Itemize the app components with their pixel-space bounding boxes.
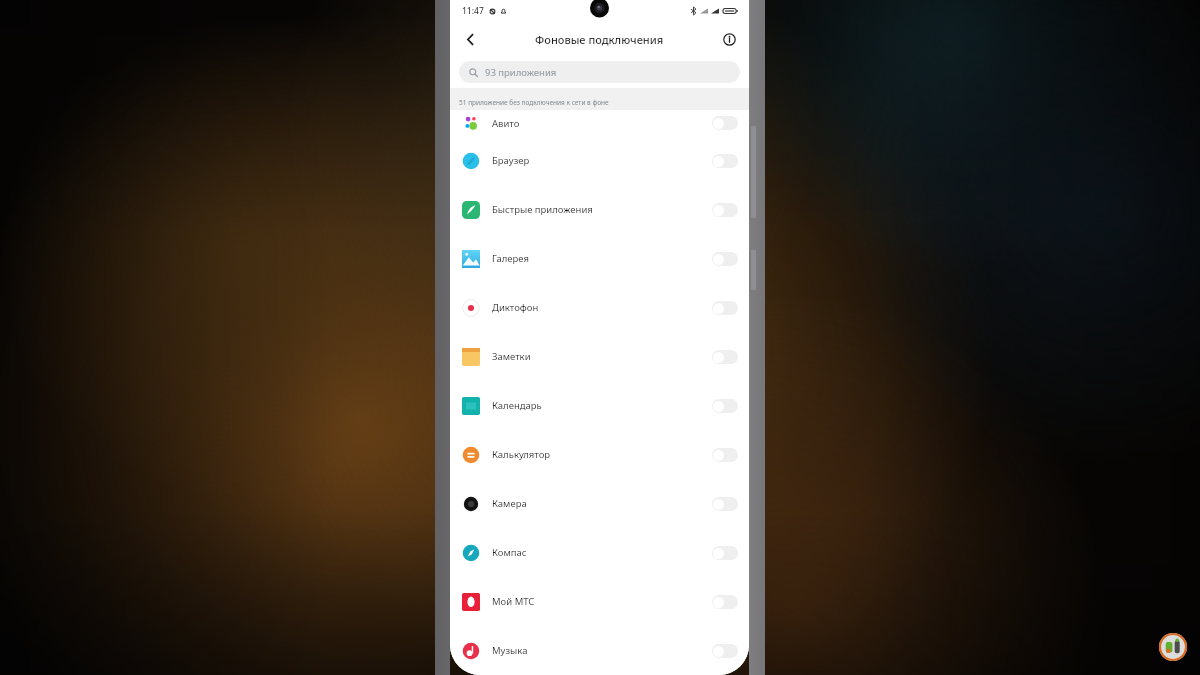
button[interactable]: Информация bbox=[714, 24, 744, 54]
staticText: Мой МТС bbox=[492, 595, 535, 608]
button[interactable]: Музыка bbox=[450, 626, 749, 675]
button[interactable]: Мой МТС bbox=[450, 577, 749, 626]
button[interactable]: Переключатель bbox=[712, 595, 738, 609]
button[interactable]: Переключатель bbox=[712, 116, 738, 130]
button[interactable]: Переключатель bbox=[712, 644, 738, 658]
button[interactable]: Переключатель bbox=[712, 399, 738, 413]
staticText: Авито bbox=[492, 117, 520, 130]
staticText: Компас bbox=[492, 546, 527, 559]
button[interactable]: Переключатель bbox=[712, 546, 738, 560]
button[interactable]: Галерея bbox=[450, 234, 749, 283]
button[interactable]: Браузер bbox=[450, 136, 749, 185]
staticText: 93 приложения bbox=[485, 66, 557, 79]
staticText: Галерея bbox=[492, 252, 529, 265]
staticText: Быстрые приложения bbox=[492, 203, 593, 216]
button[interactable]: Диктофон bbox=[450, 283, 749, 332]
staticText: Калькулятор bbox=[492, 448, 551, 461]
button[interactable]: Компас bbox=[450, 528, 749, 577]
button[interactable]: Быстрые приложения bbox=[450, 185, 749, 234]
button[interactable]: Переключатель bbox=[712, 301, 738, 315]
button[interactable]: Переключатель bbox=[712, 203, 738, 217]
button[interactable]: Переключатель bbox=[712, 252, 738, 266]
button[interactable]: Калькулятор bbox=[450, 430, 749, 479]
button[interactable]: Календарь bbox=[450, 381, 749, 430]
button[interactable]: Камера bbox=[450, 479, 749, 528]
staticText: Диктофон bbox=[492, 301, 539, 314]
button[interactable]: 93 приложения bbox=[459, 61, 740, 83]
button[interactable]: Переключатель bbox=[712, 497, 738, 511]
staticText: Календарь bbox=[492, 399, 542, 412]
button[interactable]: Авито bbox=[450, 110, 749, 136]
button[interactable]: Переключатель bbox=[712, 350, 738, 364]
staticText: Заметки bbox=[492, 350, 531, 363]
staticText: 11:47 bbox=[462, 5, 484, 17]
button[interactable]: Переключатель bbox=[712, 448, 738, 462]
staticText: Браузер bbox=[492, 154, 530, 167]
staticText: Камера bbox=[492, 497, 527, 510]
button[interactable]: Переключатель bbox=[712, 154, 738, 168]
button[interactable]: Назад bbox=[455, 24, 485, 54]
staticText: Музыка bbox=[492, 644, 528, 657]
staticText: Фоновые подключения bbox=[535, 32, 664, 47]
button[interactable]: Заметки bbox=[450, 332, 749, 381]
staticText: 51 приложение без подключения к сети в ф… bbox=[459, 98, 609, 107]
